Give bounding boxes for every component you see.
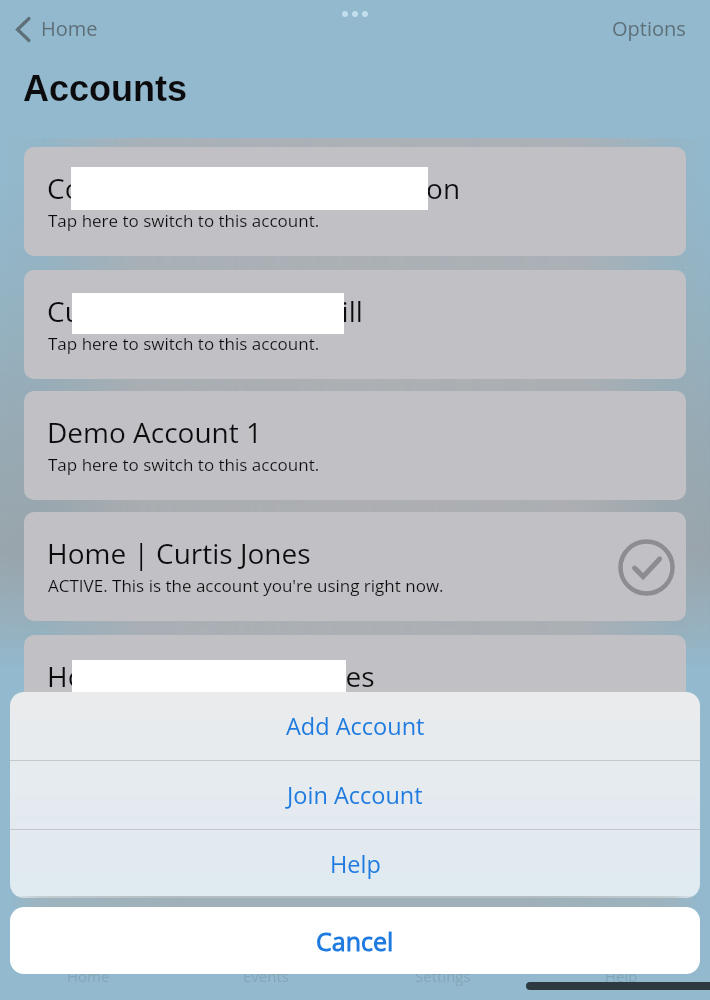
staticText: Home bbox=[41, 15, 98, 42]
staticText: Tap here to switch to this account. bbox=[48, 209, 320, 232]
staticText: Add Account bbox=[286, 710, 425, 742]
button[interactable]: Home Holiday Properties bbox=[24, 635, 686, 744]
button[interactable]: Options bbox=[596, 10, 696, 50]
staticText: Curtis Jones Monthly Bill bbox=[47, 292, 363, 330]
staticText: Home | Curtis Jones bbox=[47, 534, 311, 572]
button[interactable]: Add Account bbox=[10, 692, 700, 760]
staticText: Accounts bbox=[23, 68, 188, 108]
staticText: Tap here to switch to this account. bbox=[48, 332, 320, 355]
staticText: Community Demo Organization bbox=[47, 169, 461, 207]
staticText: Cancel bbox=[316, 924, 394, 958]
button[interactable]: Settings bbox=[354, 963, 532, 989]
button[interactable]: Home bbox=[16, 12, 98, 46]
button[interactable]: Home | Curtis Jones bbox=[24, 512, 686, 621]
button[interactable]: Events bbox=[177, 963, 354, 989]
button[interactable]: Community Demo Organization bbox=[24, 147, 686, 256]
staticText: Join Account bbox=[287, 779, 423, 811]
button[interactable]: Home bbox=[0, 963, 177, 989]
staticText: Tap here to switch to this account. bbox=[48, 453, 320, 476]
button[interactable]: Help bbox=[10, 830, 700, 898]
button[interactable]: Join Account bbox=[10, 761, 700, 829]
staticText: Demo Account 1 bbox=[47, 413, 263, 451]
staticText: Tap here to switch to this account. bbox=[48, 697, 320, 720]
staticText: Home Holiday Properties bbox=[47, 657, 375, 695]
staticText: Home bbox=[67, 966, 110, 986]
staticText: ACTIVE. This is the account you're using… bbox=[48, 574, 444, 597]
staticText: Options bbox=[612, 15, 686, 42]
staticText: Help bbox=[330, 848, 381, 880]
staticText: Help bbox=[605, 966, 638, 986]
staticText: Settings bbox=[415, 966, 471, 986]
staticText: Events bbox=[243, 966, 289, 986]
button[interactable]: Help bbox=[532, 963, 710, 989]
other: Active account bbox=[618, 539, 675, 596]
button[interactable]: Curtis Jones Monthly Bill bbox=[24, 270, 686, 379]
button[interactable]: Demo Account 1 bbox=[24, 391, 686, 500]
button[interactable]: Cancel bbox=[10, 907, 700, 974]
